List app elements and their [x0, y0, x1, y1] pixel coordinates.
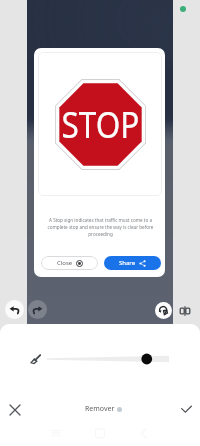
staticText: Share [119, 259, 136, 267]
button[interactable]: Done [177, 400, 196, 419]
button[interactable]: Undo [5, 300, 24, 319]
staticText: STOP [62, 100, 139, 149]
button[interactable]: Brush [29, 352, 43, 366]
button[interactable]: Share [104, 256, 161, 270]
button[interactable]: Compare [176, 302, 193, 319]
button[interactable]: Cancel [5, 400, 24, 419]
button[interactable]: Magic eraser [155, 302, 172, 319]
staticText: Remover [85, 404, 115, 414]
button[interactable]: Brush size [45, 350, 173, 368]
staticText: A Stop sign indicates that traffic must … [42, 217, 159, 237]
button[interactable]: Redo [28, 300, 47, 319]
button[interactable]: Close [41, 256, 98, 270]
staticText: Close [57, 259, 73, 267]
button[interactable]: Remover [85, 404, 122, 414]
